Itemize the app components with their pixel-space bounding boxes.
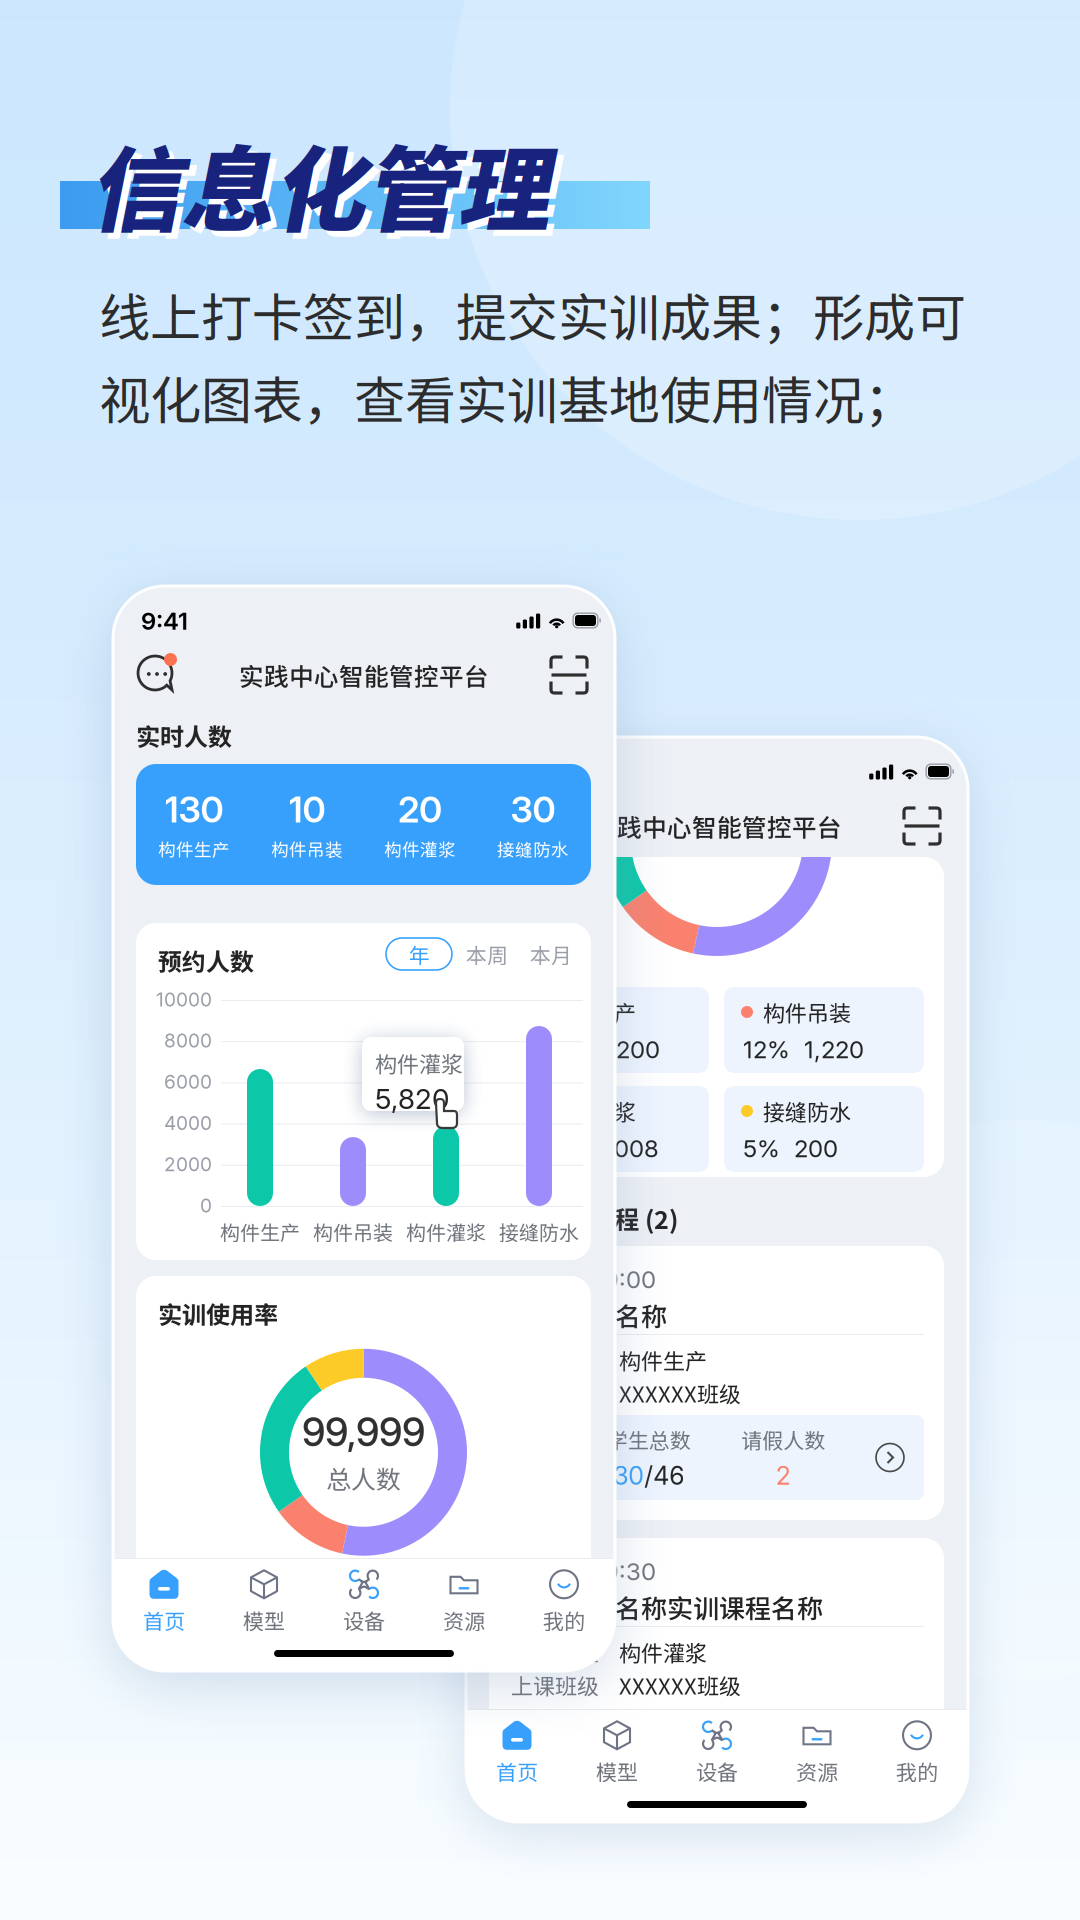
- staticText: 12%: [743, 1035, 790, 1064]
- staticText: 接缝防水: [497, 836, 569, 861]
- staticText: 视化图表，查看实训基地使用情况；: [99, 360, 915, 434]
- staticText: 30: [510, 788, 555, 831]
- staticText: 上课班级: [511, 1669, 599, 1701]
- staticText: 构件生产: [220, 1217, 300, 1246]
- button[interactable]: 模型: [214, 1569, 314, 1635]
- staticText: 09:00-09:30: [511, 1557, 656, 1586]
- staticText: 本周: [466, 939, 508, 969]
- button[interactable]: 资源: [767, 1720, 867, 1786]
- button[interactable]: 设备: [314, 1569, 414, 1635]
- staticText: 实践中心智能管控平台: [239, 657, 489, 693]
- staticText: 模型: [596, 1756, 638, 1786]
- staticText: 4000: [164, 1112, 212, 1135]
- staticText: 构件灌浆: [384, 836, 456, 861]
- staticText: 20%: [528, 1134, 580, 1163]
- staticText: 10: [288, 788, 325, 831]
- button[interactable]: 本月: [522, 938, 580, 970]
- staticText: 构件吊装: [271, 836, 343, 861]
- button[interactable]: 我的: [514, 1569, 614, 1635]
- staticText: 信息化管理: [89, 117, 549, 250]
- staticText: 10000: [156, 988, 212, 1011]
- staticText: 1,220: [804, 1035, 864, 1064]
- staticText: 30: [613, 1461, 644, 1491]
- staticText: 2,008: [594, 1134, 659, 1163]
- staticText: 请假人数: [741, 1424, 825, 1455]
- staticText: 5,820: [375, 1082, 449, 1116]
- staticText: 我的: [896, 1756, 938, 1786]
- staticText: 构件灌浆: [406, 1217, 486, 1246]
- button[interactable]: 本周: [454, 938, 520, 970]
- staticText: /46: [644, 1461, 684, 1491]
- staticText: 实时人数: [136, 718, 232, 753]
- staticText: 实训课程名称实训课程名称: [511, 1588, 823, 1626]
- staticText: 构件生产: [158, 836, 230, 861]
- staticText: 构件吊装: [313, 1217, 393, 1246]
- staticText: 20: [398, 788, 442, 831]
- staticText: 资源: [443, 1605, 485, 1635]
- staticText: 5%: [743, 1134, 780, 1163]
- staticText: 0: [200, 1194, 212, 1217]
- staticText: 我的: [543, 1605, 585, 1635]
- button[interactable]: 年: [386, 938, 452, 970]
- staticText: 63%: [528, 1035, 581, 1064]
- staticText: 构件吊装: [763, 996, 851, 1028]
- button[interactable]: 设备: [667, 1720, 767, 1786]
- staticText: 实训使用率: [158, 1296, 278, 1331]
- staticText: 本月: [530, 939, 572, 969]
- staticText: XXXXXX班级: [619, 1669, 741, 1701]
- button[interactable]: 消息: [490, 804, 534, 848]
- staticText: 实训类型: [511, 1344, 599, 1376]
- staticText: 2000: [164, 1153, 212, 1176]
- staticText: 接缝防水: [499, 1217, 579, 1246]
- staticText: 今日实训课程 (2): [489, 1200, 678, 1236]
- staticText: 99,999: [302, 1409, 425, 1456]
- staticText: 6,200: [595, 1035, 660, 1064]
- staticText: 上课班级: [511, 1377, 599, 1409]
- staticText: 6000: [164, 1070, 212, 1093]
- staticText: 实践中心智能管控平台: [592, 808, 842, 844]
- button[interactable]: 扫一扫: [547, 653, 591, 697]
- staticText: 年: [408, 939, 429, 969]
- staticText: 130: [164, 788, 223, 831]
- staticText: 实训类型: [511, 1636, 599, 1668]
- staticText: 预约人数: [158, 943, 254, 978]
- staticText: XXXXXX班级: [619, 1377, 741, 1409]
- staticText: 设备: [343, 1605, 385, 1635]
- button[interactable]: 首页: [114, 1569, 214, 1635]
- button[interactable]: 首页: [467, 1720, 567, 1786]
- staticText: 9:41: [141, 606, 188, 635]
- button[interactable]: 资源: [414, 1569, 514, 1635]
- staticText: 接缝防水: [763, 1095, 851, 1127]
- staticText: 设备: [696, 1756, 738, 1786]
- button[interactable]: 模型: [567, 1720, 667, 1786]
- button[interactable]: 消息: [137, 653, 181, 697]
- button[interactable]: 扫一扫: [900, 804, 944, 848]
- staticText: 实训课程名称: [511, 1296, 667, 1334]
- staticText: 信息化管理: [95, 123, 555, 256]
- staticText: 构件灌浆: [548, 1095, 636, 1127]
- button[interactable]: 我的: [867, 1720, 967, 1786]
- staticText: 构件灌浆: [375, 1047, 463, 1079]
- staticText: 首页: [143, 1605, 185, 1635]
- staticText: 200: [794, 1134, 838, 1163]
- staticText: 线上打卡签到，提交实训成果；形成可: [99, 277, 966, 351]
- staticText: 08:00-09:00: [511, 1265, 656, 1294]
- staticText: 构件灌浆: [619, 1636, 707, 1668]
- staticText: 首页: [496, 1756, 538, 1786]
- staticText: 模型: [243, 1605, 285, 1635]
- staticText: 学生总数: [607, 1424, 691, 1455]
- staticText: 资源: [796, 1756, 838, 1786]
- staticText: 8000: [164, 1029, 212, 1052]
- staticText: 总人数: [326, 1460, 401, 1496]
- staticText: 构件生产: [619, 1344, 707, 1376]
- staticText: 构件生产: [548, 996, 636, 1028]
- staticText: 2: [776, 1461, 791, 1491]
